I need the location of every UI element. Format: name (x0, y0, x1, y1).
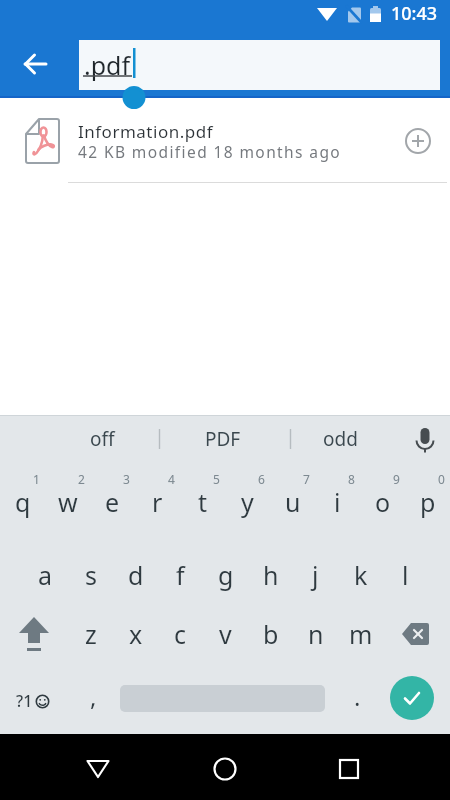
button[interactable]: f (158, 542, 203, 607)
button[interactable]: Information.pdf (0, 98, 450, 182)
staticText: h (263, 558, 279, 592)
staticText: u (285, 485, 301, 519)
button[interactable]: a (23, 542, 68, 607)
staticText: b (263, 617, 279, 651)
button[interactable]: k (338, 542, 383, 607)
staticText: x (129, 617, 143, 651)
button[interactable]: ?1 (2, 667, 64, 734)
button[interactable] (324, 746, 374, 792)
button[interactable]: l (383, 542, 428, 607)
staticText: PDF (205, 426, 241, 452)
staticText: w (58, 485, 78, 519)
staticText: m (349, 617, 373, 651)
button[interactable] (200, 746, 250, 792)
button[interactable]: , (71, 667, 116, 734)
button[interactable]: y (225, 463, 270, 538)
button[interactable]: m (338, 603, 383, 664)
button[interactable]: t (180, 463, 225, 538)
button[interactable] (13, 42, 57, 86)
button[interactable]: j (293, 542, 338, 607)
staticText: o (375, 485, 391, 519)
staticText: r (152, 485, 163, 519)
button[interactable]: w (45, 463, 90, 538)
staticText: odd (323, 426, 358, 452)
staticText: n (308, 617, 324, 651)
staticText: c (174, 617, 187, 651)
staticText: 4 (168, 471, 175, 487)
staticText: v (219, 617, 232, 651)
staticText: k (354, 558, 368, 592)
staticText: i (334, 485, 341, 519)
staticText: e (105, 485, 120, 519)
staticText: p (420, 485, 436, 519)
button[interactable]: PDF (168, 415, 278, 463)
button[interactable]: x (113, 603, 158, 664)
button[interactable]: b (248, 603, 293, 664)
button[interactable]: .pdf (79, 40, 440, 90)
staticText: s (85, 558, 97, 592)
staticText: 3 (123, 471, 130, 487)
button[interactable]: z (68, 603, 113, 664)
staticText: 6 (258, 471, 265, 487)
staticText: q (15, 485, 31, 519)
staticText: 42 KB modified 18 months ago (78, 141, 342, 162)
staticText: .pdf (84, 48, 131, 82)
button[interactable]: d (113, 542, 158, 607)
button[interactable]: . (335, 667, 380, 734)
button[interactable]: u (270, 463, 315, 538)
staticText: 10:43 (391, 1, 438, 26)
staticText: 8 (348, 471, 355, 487)
staticText: g (218, 558, 234, 592)
staticText: f (176, 558, 185, 592)
staticText: d (128, 558, 144, 592)
button[interactable]: off (47, 415, 157, 463)
button[interactable]: odd (285, 415, 395, 463)
staticText: a (38, 558, 53, 592)
staticText: 0 (438, 471, 445, 487)
staticText: 1 (33, 471, 40, 487)
button[interactable]: g (203, 542, 248, 607)
button[interactable]: v (203, 603, 248, 664)
button[interactable]: e (90, 463, 135, 538)
button[interactable] (382, 603, 450, 664)
staticText: 9 (393, 471, 400, 487)
staticText: z (85, 617, 97, 651)
button[interactable]: c (158, 603, 203, 664)
staticText: j (312, 558, 319, 592)
button[interactable]: i (315, 463, 360, 538)
staticText: 5 (213, 471, 220, 487)
button[interactable] (0, 603, 67, 664)
button[interactable] (390, 676, 434, 720)
button[interactable]: o (360, 463, 405, 538)
button[interactable]: q (0, 463, 45, 538)
staticText: 2 (78, 471, 85, 487)
staticText: off (90, 426, 115, 452)
button[interactable]: n (293, 603, 338, 664)
button[interactable] (73, 746, 123, 792)
button[interactable] (403, 418, 447, 462)
staticText: y (241, 485, 254, 519)
button[interactable]: h (248, 542, 293, 607)
button[interactable]: r (135, 463, 180, 538)
staticText: , (90, 680, 97, 713)
staticText: t (198, 485, 208, 519)
staticText: . (354, 680, 361, 713)
staticText: 7 (303, 471, 310, 487)
button[interactable]: s (68, 542, 113, 607)
staticText: ?1 (16, 690, 33, 712)
staticText: Information.pdf (78, 120, 213, 143)
button[interactable]: p (405, 463, 450, 538)
staticText: l (402, 558, 409, 592)
